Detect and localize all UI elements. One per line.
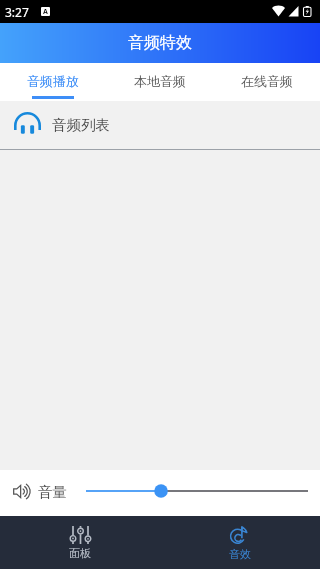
button[interactable]: 音效 [160,516,320,569]
staticText: 音频特效 [128,33,192,53]
staticText: 音频播放 [27,73,79,89]
button[interactable]: 音频列表 [0,101,320,145]
staticText: 音量 [38,483,67,501]
other: Volume [13,485,30,498]
button[interactable]: 本地音频 [106,63,213,101]
button[interactable] [86,470,308,512]
staticText: 音频列表 [52,116,110,134]
staticText: 面板 [69,546,91,560]
button[interactable]: 在线音频 [213,63,320,101]
staticText: 在线音频 [241,73,293,89]
staticText: 3:27 [5,4,29,20]
button[interactable]: 音频播放 [0,63,106,101]
button[interactable]: 面板 [0,516,160,569]
staticText: 音效 [229,547,251,561]
staticText: A [43,7,48,16]
staticText: 本地音频 [134,73,186,89]
